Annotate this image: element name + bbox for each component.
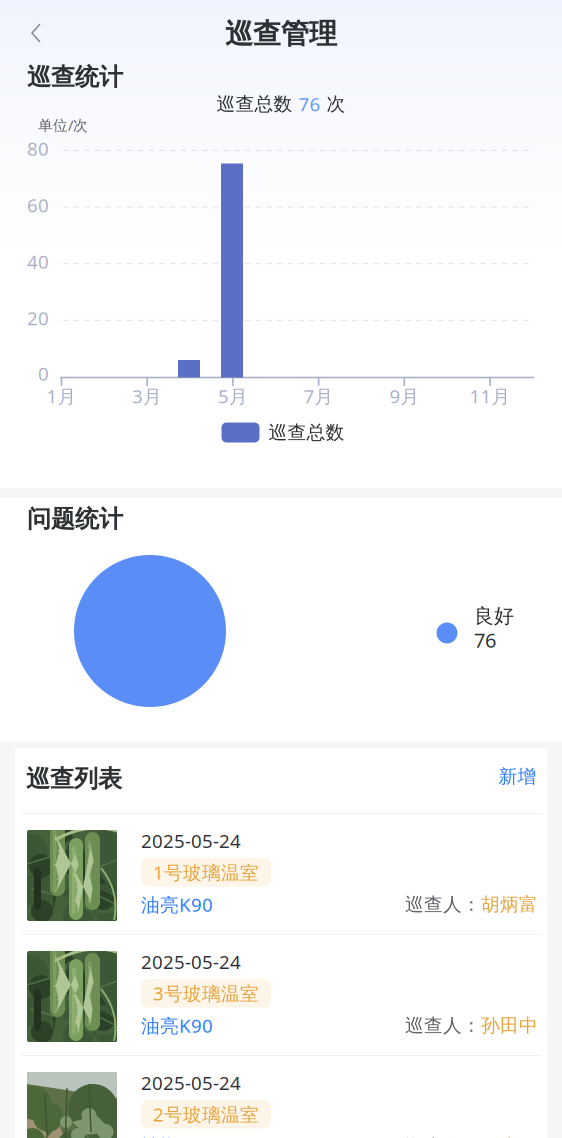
staticText: 1号玻璃温室 (153, 860, 259, 885)
staticText: 2025-05-24 (141, 949, 241, 974)
staticText: 新增 (498, 765, 536, 788)
staticText: 单位/次 (38, 115, 88, 135)
staticText: 11月 (469, 384, 510, 408)
staticText: 王大田 (481, 1135, 538, 1138)
button[interactable]: 2025-05-24 (15, 935, 547, 1055)
staticText: 5月 (218, 384, 248, 408)
staticText: 巡查人： (405, 1135, 481, 1138)
staticText: 辣椒 (141, 1135, 179, 1138)
staticText: 巡查列表 (26, 764, 122, 793)
button[interactable]: 2025-05-24 (15, 814, 547, 934)
staticText: 2号玻璃温室 (153, 1102, 259, 1127)
staticText: 0 (38, 361, 49, 386)
staticText: 76 (298, 92, 320, 116)
staticText: 良好 (474, 604, 514, 628)
staticText: 巡查人： (405, 1014, 481, 1037)
button[interactable]: 返回 (12, 10, 60, 56)
staticText: 孙田中 (481, 1014, 538, 1037)
staticText: 油亮K90 (141, 892, 213, 917)
button[interactable]: 新增 (498, 765, 536, 788)
staticText: 7月 (303, 384, 333, 408)
staticText: 油亮K90 (141, 1013, 213, 1038)
staticText: 60 (27, 193, 49, 217)
staticText: 巡查总数 (216, 92, 298, 115)
staticText: 问题统计 (27, 504, 123, 534)
staticText: 巡查管理 (225, 17, 337, 51)
staticText: 1月 (46, 384, 76, 408)
staticText: 20 (27, 306, 49, 330)
staticText: 巡查总数 (268, 421, 344, 444)
staticText: 9月 (389, 384, 419, 408)
staticText: 胡炳富 (481, 893, 538, 916)
staticText: 80 (27, 136, 49, 161)
staticText: 巡查统计 (27, 62, 123, 92)
staticText: 2025-05-24 (141, 828, 241, 853)
staticText: 巡查人： (405, 893, 481, 916)
button[interactable]: 2025-05-24 (15, 1056, 547, 1138)
staticText: 76 (474, 627, 496, 653)
staticText: 次 (320, 92, 345, 115)
staticText: 40 (27, 249, 49, 274)
staticText: 2025-05-24 (141, 1070, 241, 1095)
staticText: 3号玻璃温室 (153, 981, 259, 1006)
staticText: 3月 (132, 384, 162, 408)
